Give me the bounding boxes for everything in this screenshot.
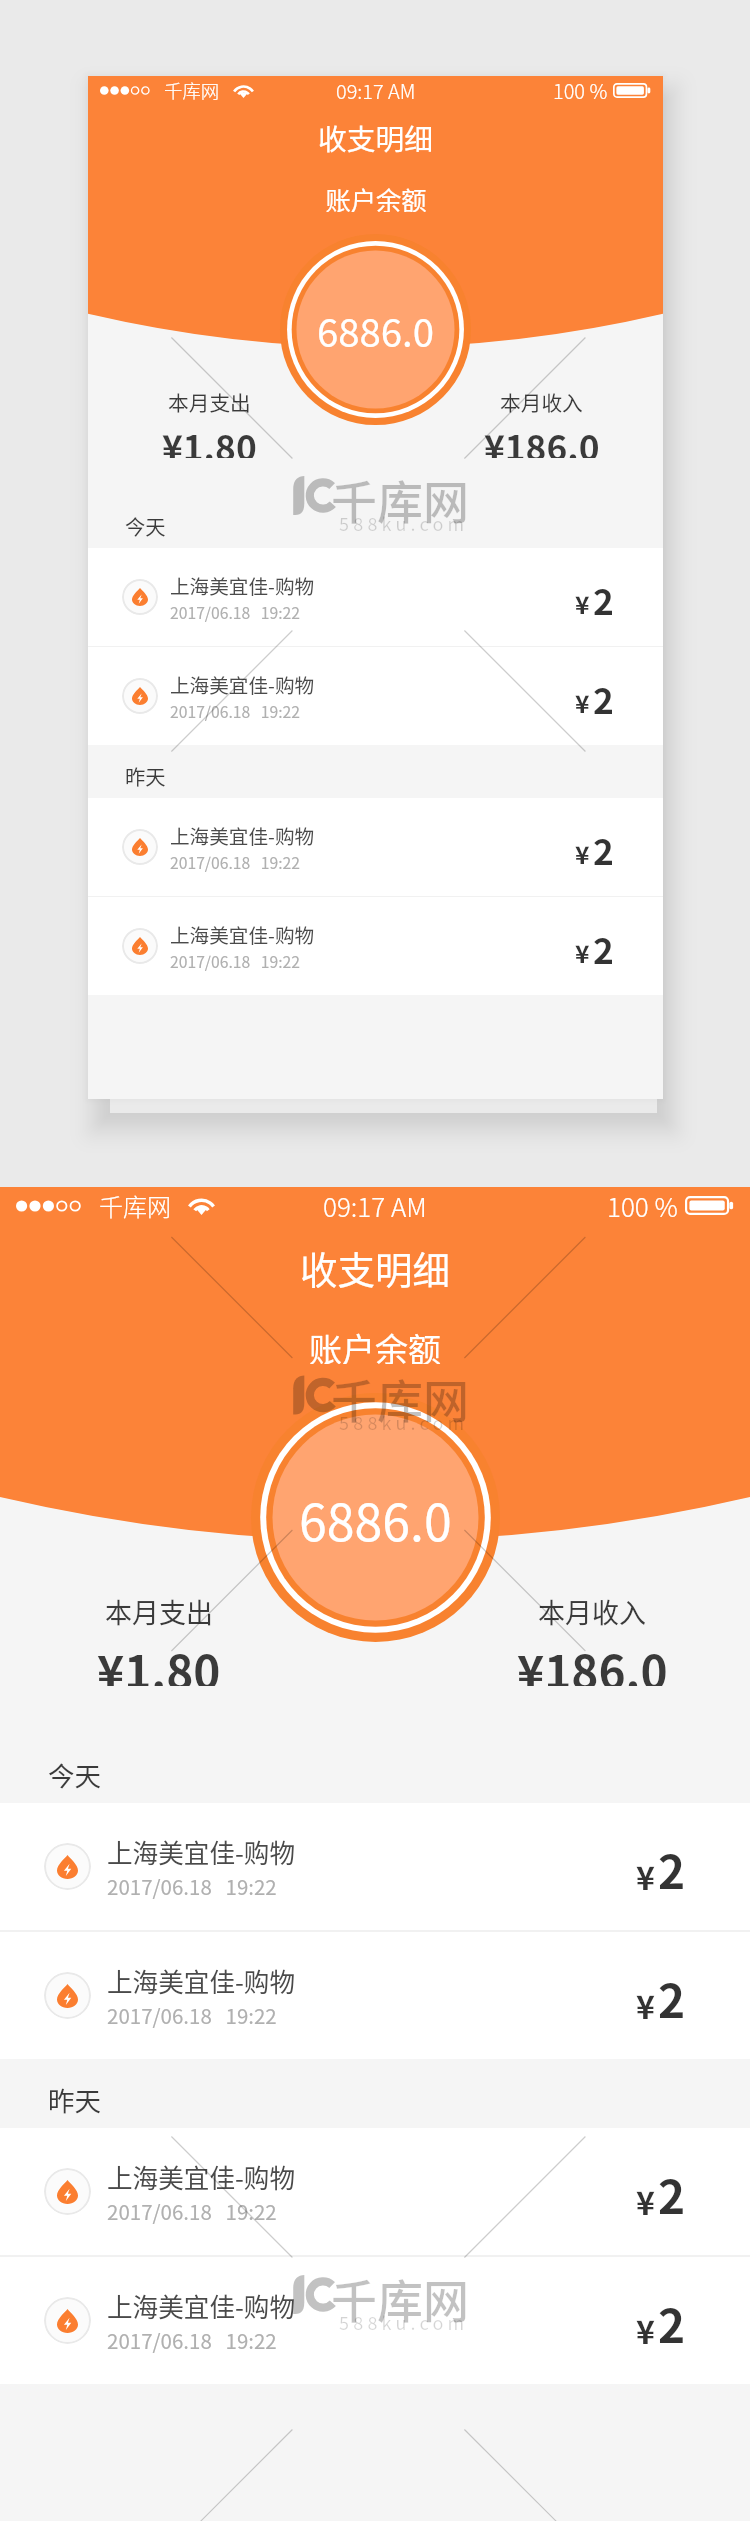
- staticText: 2017/06.18 19:22: [170, 950, 301, 973]
- staticText: 2017/06.18 19:22: [170, 601, 301, 624]
- staticText: ¥: [575, 685, 590, 721]
- staticText: 账户余额: [309, 1324, 441, 1364]
- staticText: 今天: [48, 1755, 101, 1793]
- button[interactable]: 上海美宜佳-购物: [0, 1803, 750, 1930]
- staticText: 上海美宜佳-购物: [107, 2287, 296, 2324]
- staticText: ¥: [636, 1982, 655, 2028]
- staticText: 100 %: [553, 76, 608, 104]
- staticText: 昨天: [125, 761, 166, 790]
- staticText: ¥: [575, 836, 590, 872]
- staticText: 09:17 AM: [323, 1187, 427, 1223]
- button[interactable]: 上海美宜佳-购物: [88, 647, 663, 745]
- staticText: 6886.0: [299, 1483, 452, 1555]
- staticText: 上海美宜佳-购物: [107, 1833, 296, 1870]
- staticText: 6886.0: [317, 303, 435, 359]
- staticText: 本月支出: [105, 1592, 213, 1628]
- staticText: 588ku.com: [339, 510, 469, 536]
- staticText: 千库网: [331, 2265, 469, 2332]
- staticText: ¥1.80: [162, 420, 257, 458]
- staticText: 2: [593, 824, 614, 875]
- staticText: 2: [658, 1965, 686, 2032]
- staticText: ¥186.0: [517, 1636, 668, 1686]
- staticText: 2: [593, 673, 614, 724]
- staticText: 上海美宜佳-购物: [170, 670, 315, 698]
- staticText: 上海美宜佳-购物: [170, 920, 315, 948]
- staticText: 千库网: [331, 1365, 469, 1432]
- button[interactable]: 上海美宜佳-购物: [0, 2257, 750, 2384]
- button[interactable]: 上海美宜佳-购物: [88, 548, 663, 646]
- staticText: 2: [658, 2290, 686, 2357]
- staticText: 本月收入: [500, 387, 583, 415]
- staticText: 账户余额: [325, 181, 427, 212]
- staticText: 2: [658, 1836, 686, 1903]
- staticText: 2: [593, 923, 614, 974]
- staticText: 上海美宜佳-购物: [170, 821, 315, 849]
- staticText: 上海美宜佳-购物: [107, 2158, 296, 2195]
- button[interactable]: 上海美宜佳-购物: [88, 897, 663, 995]
- staticText: 2017/06.18 19:22: [170, 851, 301, 874]
- staticText: ¥: [636, 1853, 655, 1899]
- staticText: 2: [658, 2161, 686, 2228]
- staticText: 2017/06.18 19:22: [107, 2325, 277, 2355]
- staticText: 上海美宜佳-购物: [170, 571, 315, 599]
- staticText: 100 %: [607, 1187, 678, 1223]
- staticText: 千库网: [164, 77, 220, 104]
- staticText: 2: [593, 574, 614, 625]
- staticText: 本月收入: [538, 1592, 646, 1628]
- staticText: 2017/06.18 19:22: [107, 2196, 277, 2226]
- button[interactable]: 上海美宜佳-购物: [0, 1932, 750, 2059]
- staticText: 上海美宜佳-购物: [107, 1962, 296, 1999]
- staticText: 2017/06.18 19:22: [107, 1871, 277, 1901]
- staticText: 收支明细: [318, 117, 433, 155]
- staticText: 2017/06.18 19:22: [107, 2000, 277, 2030]
- staticText: ¥: [575, 935, 590, 971]
- staticText: 588ku.com: [339, 1409, 469, 1435]
- staticText: ¥1.80: [97, 1636, 221, 1686]
- staticText: 本月支出: [168, 387, 251, 415]
- staticText: 588ku.com: [339, 2309, 469, 2335]
- staticText: 今天: [125, 511, 166, 540]
- staticText: ¥186.0: [484, 420, 600, 458]
- staticText: ¥: [636, 2178, 655, 2224]
- button[interactable]: 上海美宜佳-购物: [0, 2128, 750, 2255]
- staticText: 昨天: [48, 2080, 101, 2118]
- staticText: 2017/06.18 19:22: [170, 700, 301, 723]
- staticText: 收支明细: [300, 1240, 450, 1290]
- staticText: 千库网: [99, 1188, 171, 1223]
- staticText: ¥: [575, 586, 590, 622]
- staticText: ¥: [636, 2307, 655, 2353]
- button[interactable]: 上海美宜佳-购物: [88, 798, 663, 896]
- staticText: 09:17 AM: [336, 76, 416, 104]
- staticText: 千库网: [331, 466, 469, 533]
